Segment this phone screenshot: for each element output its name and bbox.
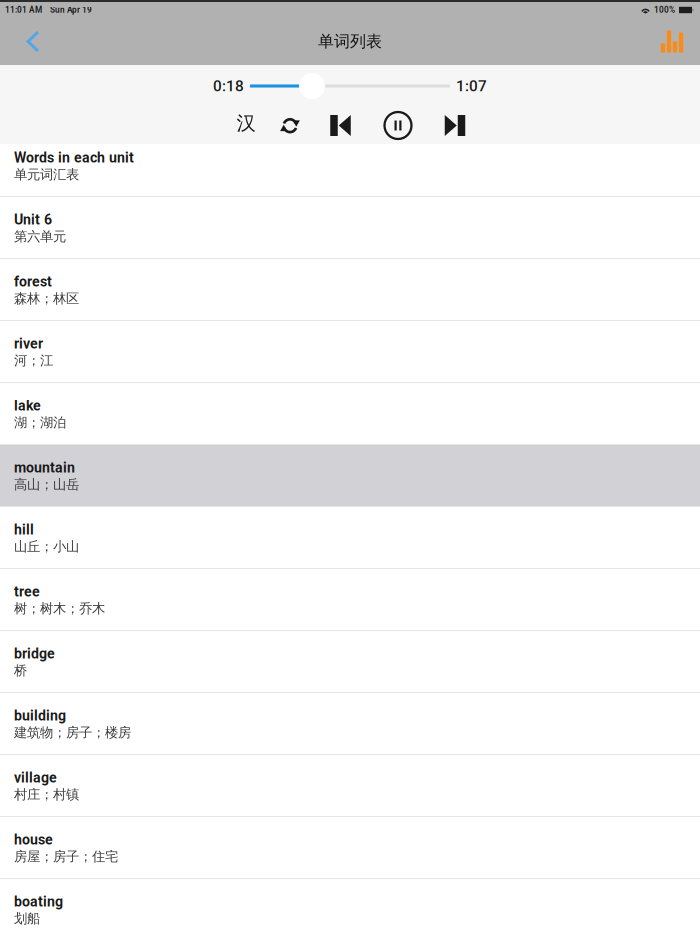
button[interactable]: Repeat: [268, 108, 312, 142]
button[interactable]: Pause: [369, 108, 427, 142]
staticText: building: [14, 707, 66, 724]
staticText: 1:07: [456, 77, 487, 95]
button[interactable]: tree: [0, 569, 700, 631]
button[interactable]: house: [0, 817, 700, 879]
staticText: 高山；山岳: [14, 476, 79, 493]
staticText: 山丘；小山: [14, 538, 79, 555]
staticText: 11:01 AM: [5, 5, 42, 15]
staticText: 划船: [14, 910, 40, 927]
staticText: 桥: [14, 662, 27, 679]
button[interactable]: forest: [0, 259, 700, 321]
button[interactable]: hill: [0, 507, 700, 569]
button[interactable]: Back: [9, 19, 57, 63]
staticText: 单元词汇表: [14, 166, 79, 183]
staticText: house: [14, 831, 53, 848]
staticText: 第六单元: [14, 228, 66, 245]
button[interactable]: Previous: [312, 108, 369, 142]
button[interactable]: village: [0, 755, 700, 817]
staticText: Unit 6: [14, 211, 52, 228]
button[interactable]: Statistics: [648, 19, 696, 63]
staticText: 森林；林区: [14, 290, 79, 307]
staticText: Words in each unit: [14, 149, 134, 166]
staticText: 河；江: [14, 352, 53, 369]
button[interactable]: Chinese: [224, 108, 268, 142]
button[interactable]: Unit 6: [0, 197, 700, 259]
staticText: 0:18: [213, 77, 244, 95]
button[interactable]: river: [0, 321, 700, 383]
staticText: 建筑物；房子；楼房: [14, 724, 131, 741]
staticText: 村庄；村镇: [14, 786, 79, 803]
button[interactable]: lake: [0, 383, 700, 445]
button[interactable]: boating: [0, 879, 700, 934]
staticText: Sun Apr 19: [50, 5, 92, 15]
staticText: forest: [14, 273, 52, 290]
staticText: 房屋；房子；住宅: [14, 848, 118, 865]
staticText: boating: [14, 893, 63, 910]
staticText: hill: [14, 521, 34, 538]
button[interactable]: bridge: [0, 631, 700, 693]
staticText: river: [14, 335, 43, 352]
staticText: 汉: [236, 111, 255, 135]
staticText: 树；树木；乔木: [14, 600, 105, 617]
button[interactable]: Words in each unit: [0, 144, 700, 197]
staticText: 湖；湖泊: [14, 414, 66, 431]
button[interactable]: mountain: [0, 445, 700, 507]
staticText: 单词列表: [318, 31, 382, 52]
staticText: mountain: [14, 459, 75, 476]
staticText: 100%: [654, 5, 675, 15]
staticText: village: [14, 769, 57, 786]
button[interactable]: Next: [427, 108, 483, 142]
staticText: tree: [14, 583, 40, 600]
staticText: lake: [14, 397, 41, 414]
button[interactable]: building: [0, 693, 700, 755]
staticText: bridge: [14, 645, 55, 662]
